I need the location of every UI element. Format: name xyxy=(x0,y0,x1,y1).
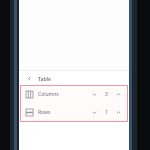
button[interactable]: Decrease Rows xyxy=(90,108,99,117)
button[interactable]: Increase Rows xyxy=(114,108,123,117)
staticText: 1 xyxy=(105,109,108,116)
staticText: Rows xyxy=(38,109,51,116)
button[interactable]: Decrease Columns xyxy=(90,90,99,99)
staticText: 3 xyxy=(105,91,108,98)
button[interactable]: Increase Columns xyxy=(114,90,123,99)
staticText: Columns xyxy=(38,91,59,98)
button[interactable]: Back xyxy=(19,71,129,85)
button[interactable]: Columns xyxy=(20,85,128,103)
staticText: Table xyxy=(38,75,52,82)
button[interactable]: Back xyxy=(25,74,34,83)
button[interactable]: Rows xyxy=(20,103,128,121)
